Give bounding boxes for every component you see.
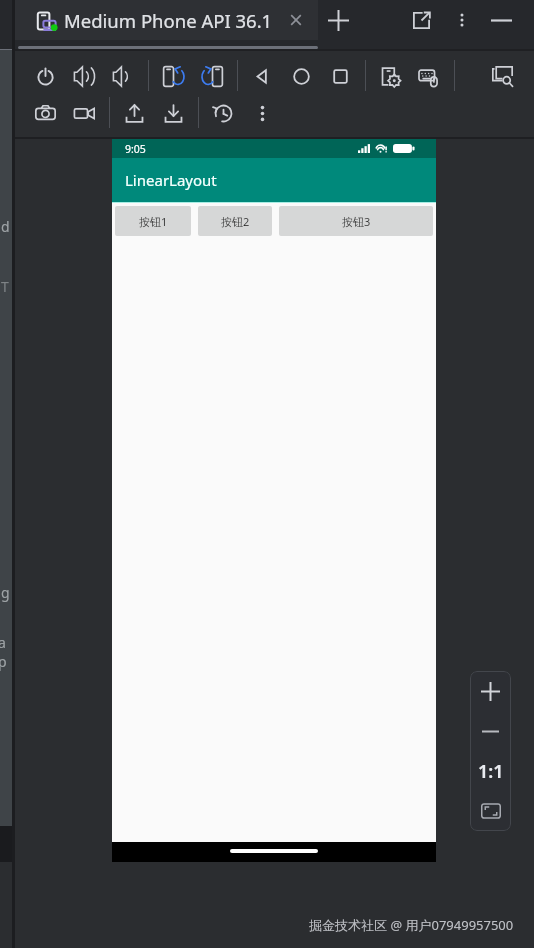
staticText: 按钮1	[139, 214, 168, 229]
button[interactable]: Home	[282, 58, 321, 94]
staticText: 9:05	[125, 142, 146, 156]
button[interactable]: Zoom to actual size	[470, 751, 511, 791]
staticText: LinearLayout	[125, 170, 217, 190]
button[interactable]: Keyboard and mouse	[410, 58, 449, 94]
button[interactable]: Power	[26, 58, 65, 94]
staticText: 1:1	[478, 759, 504, 784]
button[interactable]: New tab	[318, 0, 358, 40]
button[interactable]: 按钮3	[279, 206, 433, 236]
staticText: ap	[0, 633, 10, 671]
staticText: 掘金技术社区 @ 用户07949957500	[309, 916, 514, 934]
button[interactable]: Inspect UI	[483, 58, 522, 94]
button[interactable]: Open in new window	[403, 0, 439, 40]
button[interactable]: Take screenshot	[26, 95, 65, 131]
staticText: 按钮3	[342, 214, 371, 229]
button[interactable]: More	[243, 95, 282, 131]
button[interactable]: 按钮2	[198, 206, 272, 236]
staticText: d	[1, 217, 10, 236]
button[interactable]: Download file	[154, 95, 193, 131]
button[interactable]: Zoom out	[470, 711, 511, 751]
button[interactable]: Volume down	[104, 58, 143, 94]
button[interactable]: 按钮1	[115, 206, 191, 236]
button[interactable]: Rotate right	[193, 58, 232, 94]
staticText: Medium Phone API 36.1	[64, 8, 273, 33]
button[interactable]: More options	[449, 0, 475, 40]
staticText: T	[1, 277, 9, 296]
button[interactable]: Volume up	[65, 58, 104, 94]
button[interactable]: Back	[243, 58, 282, 94]
button[interactable]: Upload file	[115, 95, 154, 131]
button[interactable]: Rotate left	[154, 58, 193, 94]
button[interactable]: Close tab	[283, 7, 309, 33]
staticText: 按钮2	[221, 214, 250, 229]
button[interactable]: History	[204, 95, 243, 131]
button[interactable]: Medium Phone API 36.1	[15, 0, 318, 40]
button[interactable]: Record screen	[65, 95, 104, 131]
button[interactable]: Minimize	[483, 0, 519, 40]
button[interactable]: Overview	[321, 58, 360, 94]
button[interactable]: Zoom in	[470, 671, 511, 711]
button[interactable]: Device settings	[371, 58, 410, 94]
button[interactable]: Fit to window	[470, 791, 511, 831]
staticText: g	[1, 583, 10, 602]
